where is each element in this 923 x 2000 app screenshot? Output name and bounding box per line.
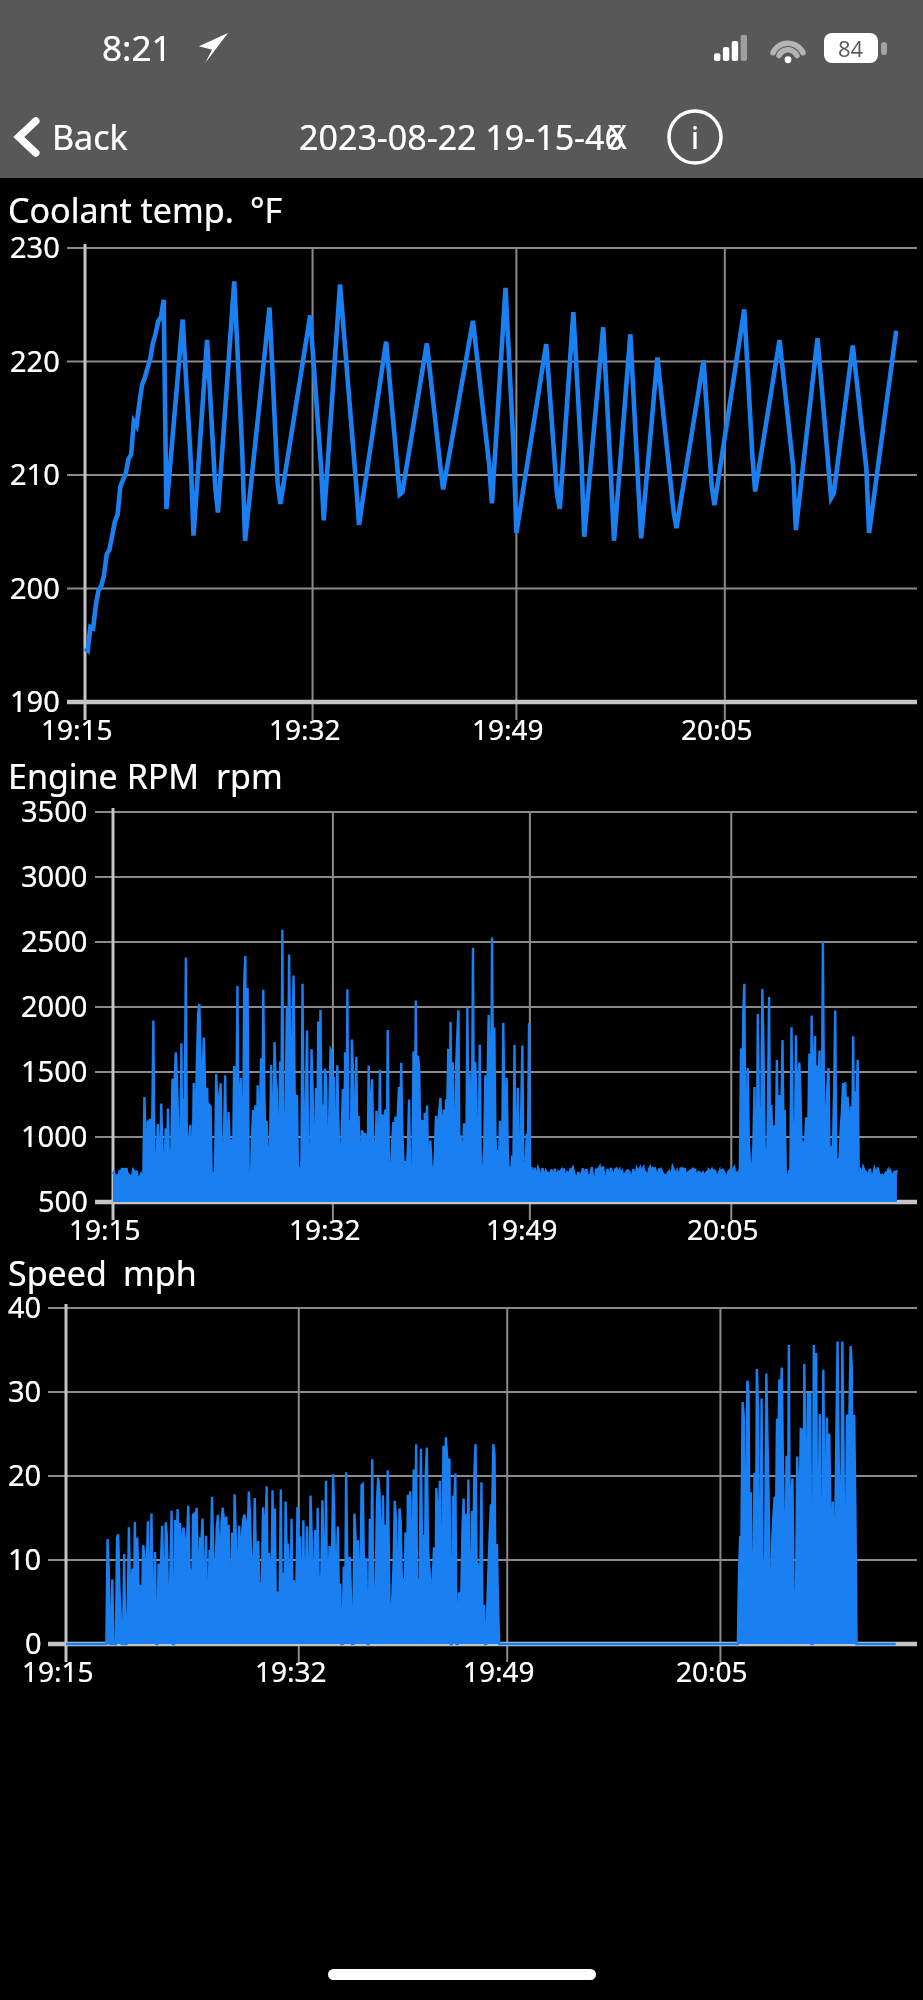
staticText: 3500 (21, 791, 88, 830)
staticText: 210 (10, 454, 60, 493)
button[interactable]: Info (663, 105, 727, 169)
staticText: 20 (8, 1455, 42, 1494)
button[interactable]: Close (594, 105, 641, 169)
staticText: rpm (216, 753, 283, 799)
button[interactable]: Back (0, 104, 144, 170)
staticText: 200 (10, 568, 60, 607)
staticText: 19:49 (472, 710, 544, 748)
staticText: 20:05 (681, 710, 753, 748)
staticText: 19:15 (22, 1652, 94, 1688)
staticText: 1500 (21, 1051, 88, 1090)
staticText: 19:32 (289, 1210, 361, 1246)
staticText: °F (250, 187, 283, 233)
staticText: 230 (10, 227, 60, 266)
staticText: 10 (8, 1539, 42, 1578)
staticText: 2500 (21, 921, 88, 960)
staticText: 19:15 (69, 1210, 141, 1246)
staticText: X (608, 115, 627, 159)
staticText: 500 (38, 1181, 88, 1220)
staticText: 190 (10, 681, 60, 720)
staticText: 2023-08-22 19-15-46 (299, 114, 624, 160)
staticText: 19:49 (463, 1652, 535, 1688)
staticText: 0 (25, 1623, 42, 1662)
staticText: 2000 (21, 986, 88, 1025)
staticText: 220 (10, 341, 60, 380)
staticText: 30 (8, 1371, 42, 1410)
staticText: mph (123, 1250, 197, 1296)
staticText: 19:49 (486, 1210, 558, 1246)
staticText: Coolant temp. (8, 187, 234, 233)
staticText: 84 (838, 33, 864, 63)
staticText: 19:32 (269, 710, 341, 748)
staticText: i (691, 116, 699, 158)
staticText: 40 (8, 1287, 42, 1326)
staticText: 8:21 (102, 24, 172, 72)
staticText: Speed (8, 1250, 107, 1296)
staticText: 19:15 (41, 710, 113, 748)
staticText: 20:05 (676, 1652, 748, 1688)
staticText: Engine RPM (8, 753, 200, 799)
staticText: 19:32 (255, 1652, 327, 1688)
staticText: Back (52, 114, 128, 160)
staticText: 20:05 (687, 1210, 759, 1246)
staticText: 1000 (21, 1116, 88, 1155)
staticText: 3000 (21, 856, 88, 895)
